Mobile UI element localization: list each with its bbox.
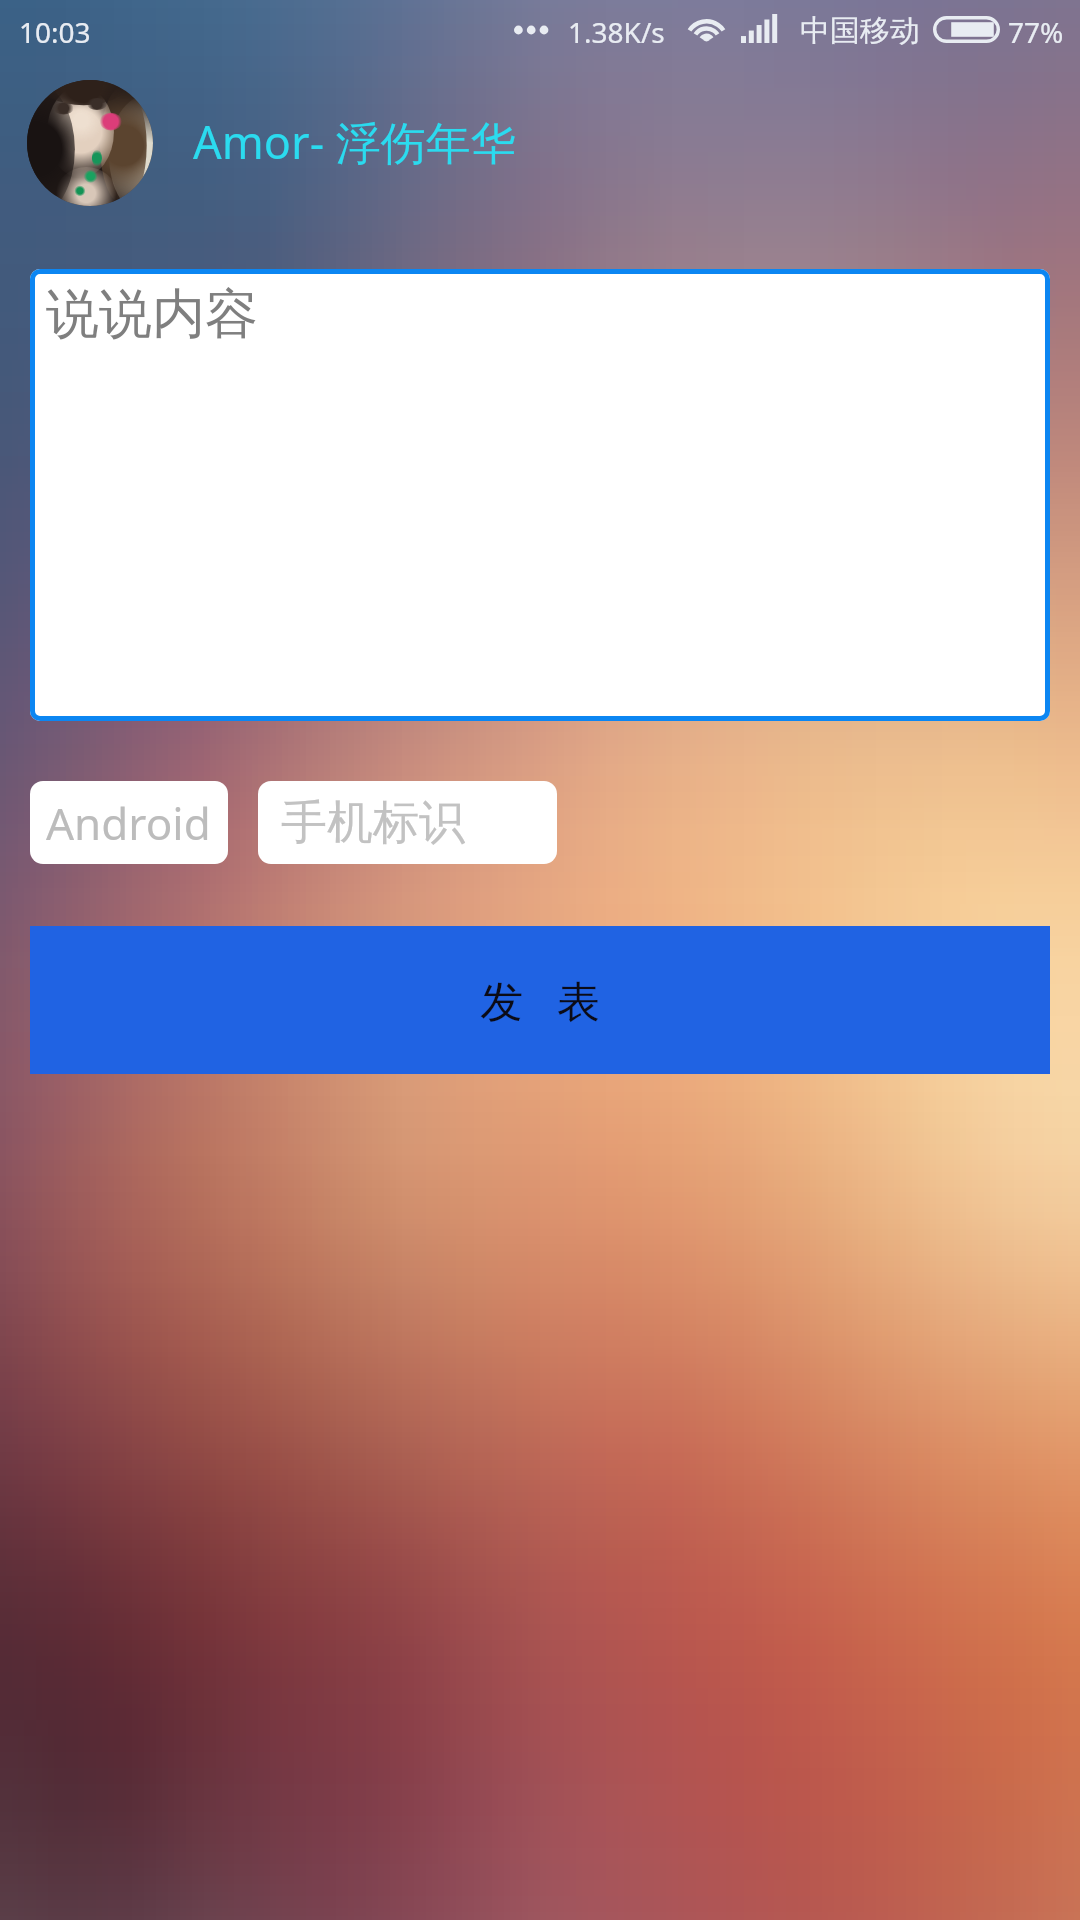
staticText: 1.38K/s	[568, 13, 665, 51]
other: More status icons	[514, 24, 556, 36]
other: Wi-Fi signal	[686, 14, 727, 43]
button[interactable]: 发 表	[30, 926, 1050, 1074]
staticText: Android	[46, 793, 211, 853]
staticText: 中国移动	[800, 12, 920, 50]
button[interactable]: Android	[30, 781, 228, 864]
other: Battery 77 percent	[933, 16, 1000, 43]
button[interactable]: 说说内容	[30, 269, 1050, 721]
staticText: 77%	[1008, 13, 1064, 51]
staticText: 10:03	[19, 13, 91, 51]
other: Mobile signal strength	[741, 14, 781, 43]
staticText: 说说内容	[46, 281, 258, 348]
button[interactable]: 手机标识	[258, 781, 557, 864]
staticText: Amor- 浮伤年华	[193, 111, 516, 172]
staticText: 手机标识	[281, 794, 465, 852]
button[interactable]: Profile photo	[27, 80, 153, 206]
staticText: 发 表	[480, 971, 600, 1030]
